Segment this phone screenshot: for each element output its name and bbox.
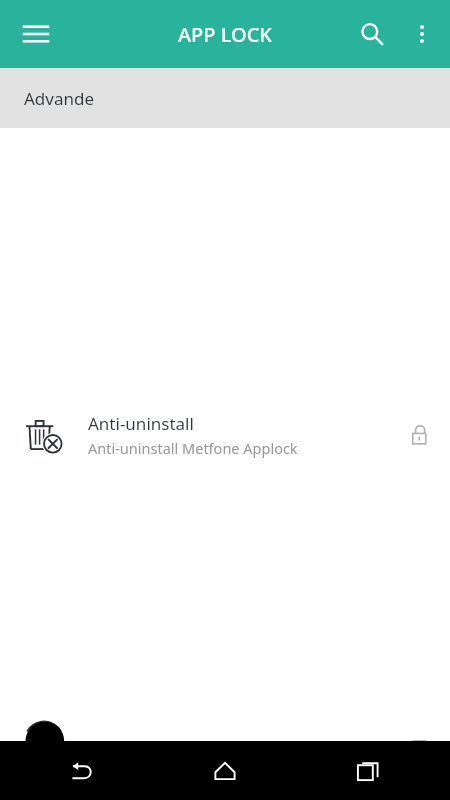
button[interactable]: Recent apps (344, 747, 392, 795)
button[interactable]: More options (398, 10, 446, 58)
button[interactable]: Anti-uninstall (0, 128, 450, 741)
button[interactable]: Toggle lock (388, 128, 450, 741)
staticText: Advande (24, 87, 95, 110)
button[interactable]: Back (58, 747, 106, 795)
staticText: Anti-uninstall (88, 412, 194, 435)
button[interactable]: Menu (10, 8, 62, 60)
staticText: APP LOCK (178, 21, 272, 48)
button[interactable]: Search (346, 8, 398, 60)
button[interactable]: Home (201, 747, 249, 795)
staticText: Anti-uninstall Metfone Applock (88, 438, 298, 458)
